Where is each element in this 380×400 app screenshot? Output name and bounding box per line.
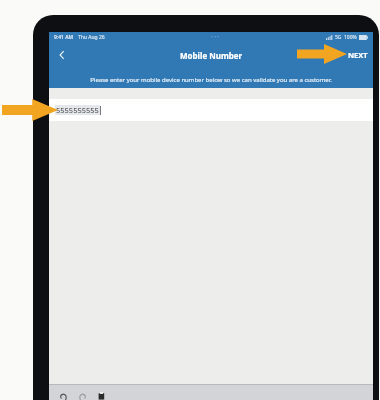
staticText: 5G [335,34,342,41]
button[interactable]: Undo [56,389,70,400]
staticText: Please enter your mobile device number b… [57,76,365,84]
button[interactable]: Paste [94,389,108,400]
staticText: 100% [344,34,357,41]
staticText: 9:41 AM [54,34,74,41]
button[interactable]: 5555555555 [49,99,373,121]
staticText: Thu Aug 26 [78,34,105,41]
button[interactable]: Redo [75,389,89,400]
button[interactable]: NEXT [348,50,368,60]
button[interactable]: Back [52,45,72,65]
staticText: 5555555555 [56,105,99,115]
staticText: NEXT [348,50,368,60]
staticText: • • • [211,34,220,41]
staticText: Mobile Number [180,50,243,61]
